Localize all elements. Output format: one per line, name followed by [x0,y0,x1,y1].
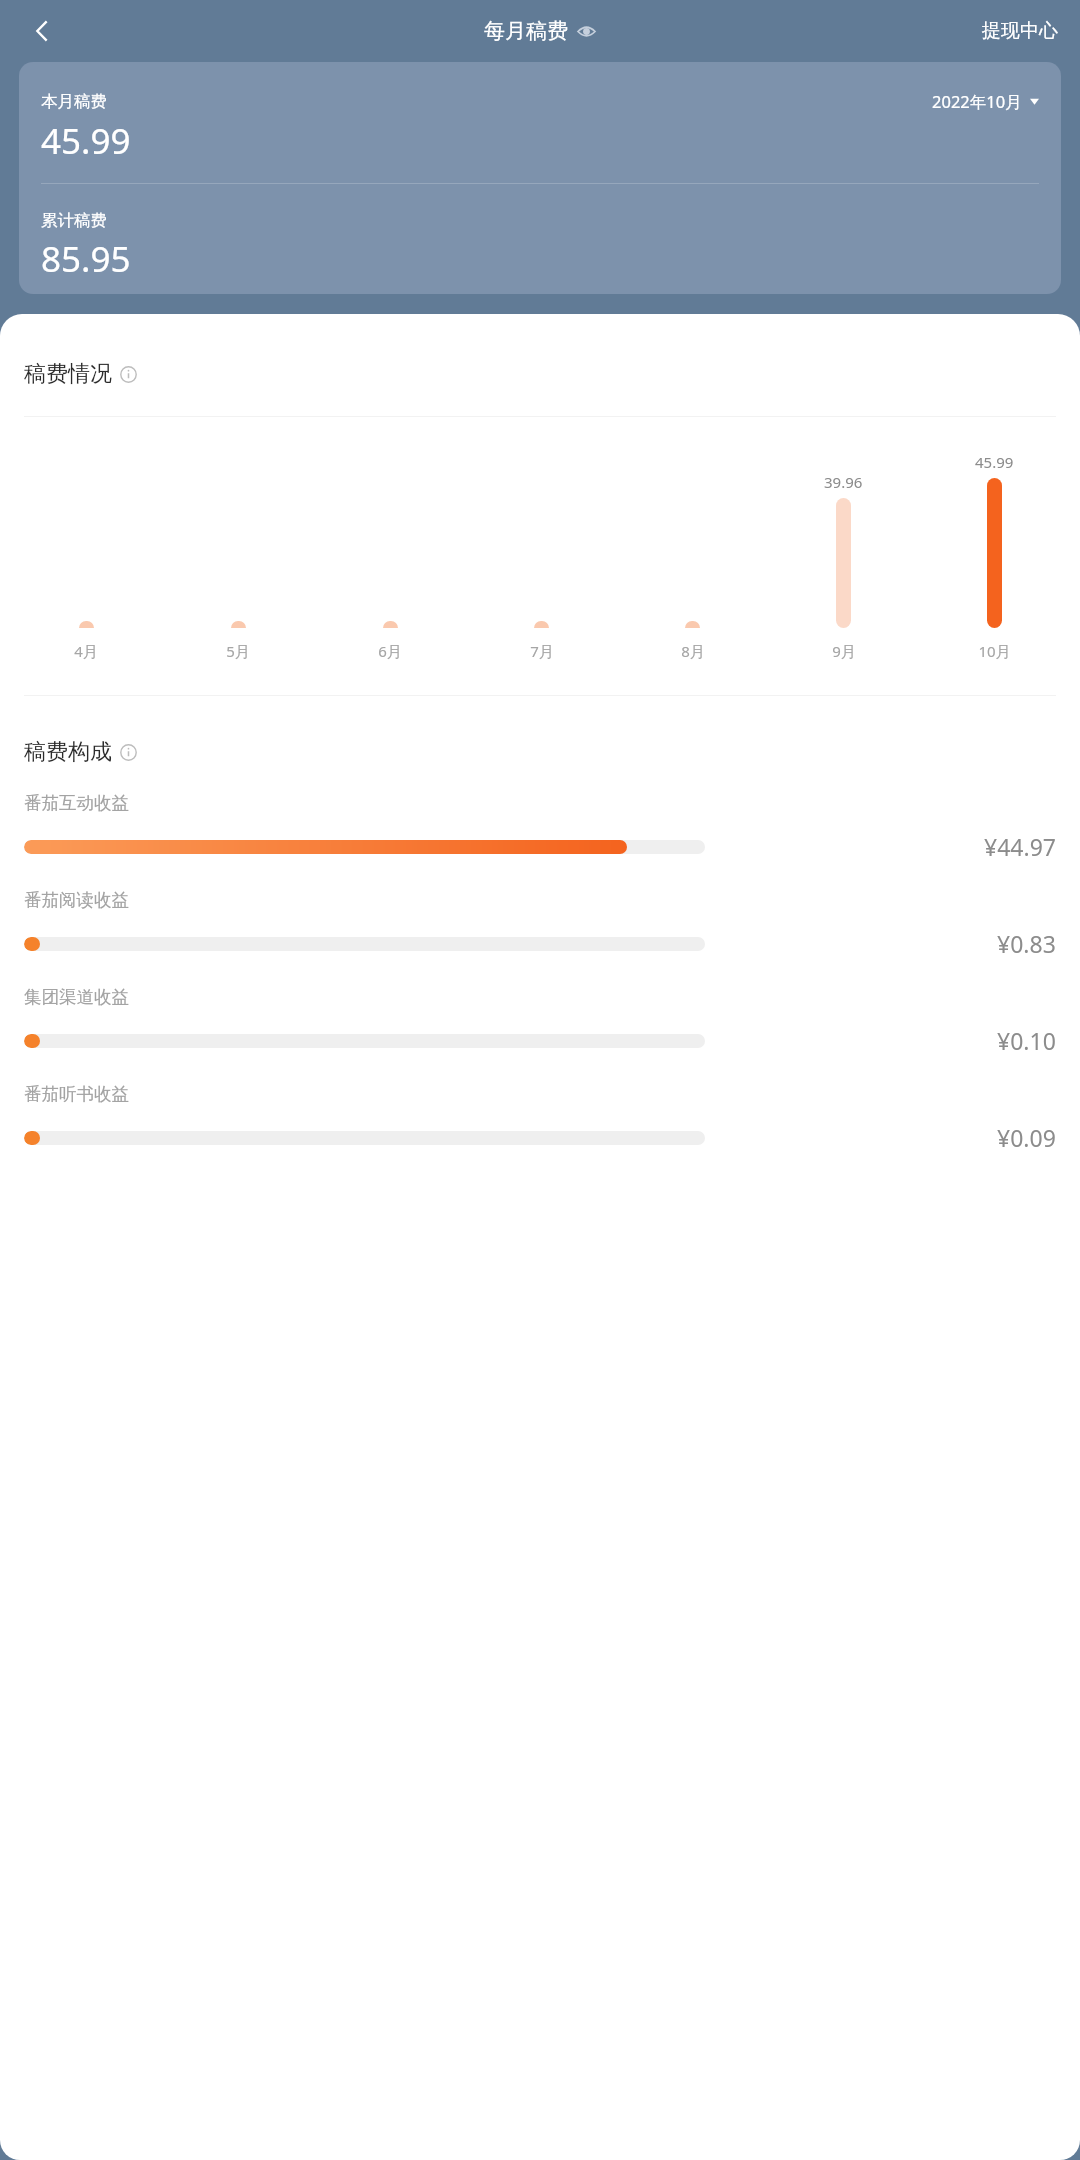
staticText: 本月稿费 [41,91,107,112]
button[interactable]: 稿费情况 [0,360,1080,388]
button[interactable]: 2022年10月 [932,90,1039,113]
staticText: 45.99 [41,117,131,165]
staticText: 2022年10月 [932,90,1022,113]
staticText: 提现中心 [982,19,1058,43]
button[interactable]: 番茄互动收益 [0,792,1080,889]
staticText: 45.99 [975,452,1014,472]
staticText: 85.95 [41,235,131,283]
staticText: 集团渠道收益 [24,986,129,1008]
staticText: ¥0.83 [997,928,1056,959]
staticText: 稿费构成 [24,738,112,766]
button[interactable]: 提现中心 [976,9,1064,53]
button[interactable]: 本月稿费 [19,62,1061,294]
staticText: 9月 [832,641,856,661]
staticText: 8月 [681,641,705,661]
staticText: ¥0.10 [997,1025,1056,1056]
other: Info [120,744,137,761]
button[interactable]: 稿费构成 [0,738,1080,766]
staticText: 5月 [226,641,250,661]
staticText: 39.96 [824,472,863,492]
button[interactable]: 番茄阅读收益 [0,889,1080,986]
button[interactable]: Back [18,7,66,55]
staticText: 番茄阅读收益 [24,889,129,911]
button[interactable]: 每月稿费 [484,18,596,44]
staticText: 6月 [378,641,402,661]
staticText: 7月 [530,641,554,661]
staticText: 番茄互动收益 [24,792,129,814]
staticText: 4月 [74,641,98,661]
staticText: 每月稿费 [484,18,568,44]
other: Toggle amount visibility [577,22,596,41]
staticText: 稿费情况 [24,360,112,388]
staticText: 番茄听书收益 [24,1083,129,1105]
button[interactable]: 番茄听书收益 [0,1083,1080,1180]
staticText: ¥0.09 [997,1122,1056,1153]
other: Info [120,366,137,383]
staticText: 10月 [978,641,1011,661]
staticText: 累计稿费 [41,210,107,231]
staticText: ¥44.97 [984,831,1056,862]
button[interactable]: 集团渠道收益 [0,986,1080,1083]
